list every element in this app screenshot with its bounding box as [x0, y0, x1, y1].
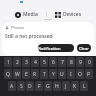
staticText: T — [43, 71, 46, 78]
staticText: I — [70, 71, 72, 78]
button[interactable]: Devices — [53, 10, 84, 19]
button[interactable]: W — [13, 69, 21, 79]
staticText: 4 — [34, 59, 37, 66]
button[interactable]: 0 — [85, 57, 93, 67]
button[interactable]: S — [17, 81, 25, 91]
button[interactable]: 6 — [49, 57, 57, 67]
button[interactable]: 8 — [67, 57, 75, 67]
staticText: J — [65, 83, 67, 90]
staticText: W — [15, 71, 20, 78]
staticText: D — [28, 83, 32, 90]
staticText: 7 — [61, 59, 64, 66]
staticText: U — [60, 71, 64, 78]
button[interactable]: 2 — [13, 57, 21, 67]
staticText: Devices — [63, 11, 82, 18]
button[interactable]: 9 — [76, 57, 84, 67]
button[interactable]: U — [58, 69, 66, 79]
staticText: Y — [52, 71, 55, 78]
staticText: Clear — [79, 46, 89, 51]
staticText: 8 — [70, 59, 73, 66]
staticText: R — [33, 71, 37, 78]
staticText: 5 — [43, 59, 46, 66]
button[interactable]: T — [40, 69, 48, 79]
button[interactable]: 1 — [4, 57, 12, 67]
button[interactable]: App icon — [2, 22, 94, 55]
button[interactable]: Clear — [77, 44, 91, 52]
staticText: Media — [23, 11, 38, 18]
button[interactable]: K — [71, 81, 79, 91]
staticText: H — [55, 83, 59, 90]
staticText: Still a net processed — [5, 33, 53, 40]
button[interactable]: D — [26, 81, 34, 91]
button[interactable]: L — [80, 81, 88, 91]
button[interactable]: O — [76, 69, 84, 79]
staticText: S — [20, 83, 23, 90]
button[interactable]: 3 — [22, 57, 30, 67]
button[interactable]: 5 — [40, 57, 48, 67]
staticText: L — [83, 83, 86, 90]
staticText: A — [10, 83, 14, 90]
button[interactable]: A — [8, 81, 16, 91]
staticText: P — [87, 71, 91, 78]
staticText: 9 — [79, 59, 82, 66]
staticText: Photos — [11, 25, 25, 30]
staticText: 6 — [52, 59, 55, 66]
staticText: 2 — [16, 59, 19, 66]
staticText: Q — [6, 71, 10, 78]
staticText: G — [46, 83, 50, 90]
button[interactable]: P — [85, 69, 93, 79]
button[interactable]: Q — [4, 69, 12, 79]
staticText: O — [78, 71, 82, 78]
other: App icon — [5, 26, 9, 30]
button[interactable]: 7 — [58, 57, 66, 67]
button[interactable]: Media — [13, 10, 40, 19]
button[interactable]: J — [62, 81, 70, 91]
button[interactable]: F — [35, 81, 43, 91]
button[interactable]: Notification settings — [38, 44, 74, 52]
staticText: K — [73, 83, 77, 90]
staticText: Notification settings — [38, 46, 74, 51]
staticText: E — [25, 71, 28, 78]
staticText: 1 — [7, 59, 10, 66]
button[interactable]: 4 — [31, 57, 39, 67]
button[interactable]: G — [44, 81, 52, 91]
button[interactable]: H — [53, 81, 61, 91]
staticText: F — [38, 83, 41, 90]
button[interactable]: R — [31, 69, 39, 79]
staticText: 3 — [25, 59, 28, 66]
staticText: 0 — [88, 59, 91, 66]
button[interactable]: I — [67, 69, 75, 79]
button[interactable]: E — [22, 69, 30, 79]
button[interactable]: Y — [49, 69, 57, 79]
